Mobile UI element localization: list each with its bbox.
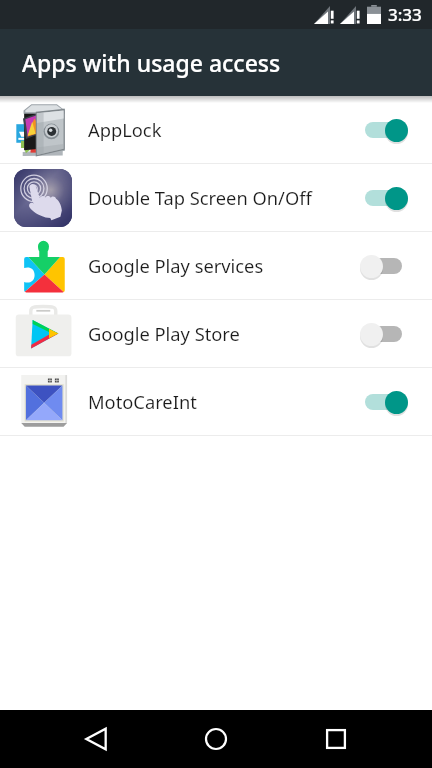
staticText: Apps with usage access [22, 47, 281, 78]
staticText: Google Play Store [88, 321, 360, 346]
button[interactable]: Home [187, 710, 245, 768]
button[interactable]: AppLock [0, 96, 432, 163]
button[interactable]: Google Play Store [0, 300, 432, 367]
staticText: MotoCareInt [88, 389, 360, 414]
button[interactable]: Double Tap Screen On/Off [0, 164, 432, 231]
button[interactable]: Google Play services [0, 232, 432, 299]
button[interactable]: Back [67, 710, 125, 768]
staticText: AppLock [88, 117, 360, 142]
staticText: 3:33 [388, 3, 422, 26]
button[interactable]: Recent apps [307, 710, 365, 768]
staticText: Google Play services [88, 253, 360, 278]
button[interactable]: MotoCareInt [0, 368, 432, 435]
staticText: Double Tap Screen On/Off [88, 185, 360, 210]
